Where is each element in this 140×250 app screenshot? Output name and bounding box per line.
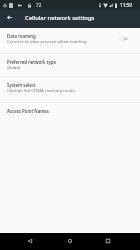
- staticText: Change the CDMA roaming mode: [7, 87, 75, 93]
- button[interactable]: Access Point Names: [0, 102, 140, 122]
- button[interactable]: Back: [11, 233, 49, 250]
- button[interactable]: Data roaming toggle: [112, 27, 132, 53]
- staticText: Preferred network type: [7, 59, 56, 65]
- staticText: System select: [7, 82, 36, 88]
- staticText: Access Point Names: [7, 108, 49, 114]
- button[interactable]: Home: [51, 233, 89, 250]
- staticText: Data roaming: [7, 33, 36, 39]
- button[interactable]: Recent apps: [89, 233, 127, 250]
- staticText: 11:59: [120, 2, 132, 8]
- button[interactable]: Navigate up: [0, 8, 19, 27]
- staticText: 72: [36, 2, 42, 8]
- staticText: Global: [7, 64, 20, 70]
- button[interactable]: Preferred network type: [0, 53, 140, 76]
- button[interactable]: Data roaming: [0, 27, 140, 53]
- button[interactable]: System select: [0, 76, 140, 102]
- staticText: Cellular network settings: [25, 14, 95, 22]
- staticText: Connect to data services when roaming: [7, 38, 87, 44]
